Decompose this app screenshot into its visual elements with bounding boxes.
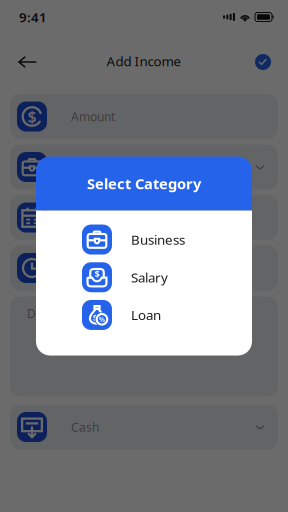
button[interactable]: Category [10, 144, 278, 189]
staticText: $ [27, 106, 36, 127]
button[interactable]: Description [10, 296, 278, 396]
button[interactable]: Back [9, 45, 46, 79]
button[interactable]: Business [82, 221, 252, 258]
staticText: % [99, 315, 105, 324]
staticText: Select Category [87, 174, 201, 193]
staticText: Time [71, 260, 99, 276]
button[interactable]: $ [82, 296, 252, 334]
button[interactable]: $ [10, 94, 278, 139]
staticText: Salary [131, 268, 168, 286]
staticText: Amount [71, 108, 115, 124]
staticText: Cash [71, 419, 99, 435]
staticText: $ [94, 268, 99, 280]
button[interactable]: Date [10, 195, 278, 240]
staticText: Description [27, 305, 91, 321]
staticText: $ [93, 312, 98, 324]
button[interactable]: Save [245, 44, 281, 80]
staticText: Date [71, 209, 98, 225]
button[interactable]: $ [82, 258, 252, 296]
button[interactable]: Cash [10, 404, 278, 449]
button[interactable]: Time [10, 245, 278, 290]
staticText: 9:41 [19, 8, 47, 26]
staticText: Add Income [106, 52, 181, 70]
staticText: Loan [131, 306, 161, 324]
staticText: Business [131, 231, 185, 248]
